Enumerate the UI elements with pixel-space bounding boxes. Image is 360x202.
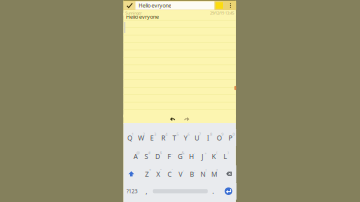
staticText: T	[172, 133, 176, 142]
staticText: _	[171, 150, 173, 155]
button[interactable]: C	[164, 165, 175, 182]
button[interactable]: Z	[141, 165, 153, 182]
staticText: W	[138, 133, 144, 142]
staticText: L	[223, 152, 226, 161]
button[interactable]: J	[197, 147, 208, 164]
button[interactable]: V	[175, 165, 186, 182]
staticText: I	[207, 133, 209, 142]
button[interactable]: Undo	[170, 117, 175, 121]
staticText: Y	[184, 133, 188, 142]
staticText: 6	[188, 131, 190, 137]
button[interactable]: Q	[124, 129, 135, 146]
button[interactable]: L	[219, 147, 231, 164]
staticText: R	[161, 133, 165, 142]
staticText: D	[155, 152, 160, 161]
staticText: ;	[194, 168, 195, 173]
staticText: 4	[165, 131, 167, 137]
staticText: (	[216, 150, 217, 155]
button[interactable]: A	[130, 147, 141, 164]
staticText: F	[167, 152, 170, 161]
button[interactable]: M	[209, 165, 220, 182]
staticText: S	[145, 152, 149, 161]
staticText: -	[194, 150, 195, 155]
staticText: 1	[132, 131, 134, 137]
staticText: $	[160, 150, 162, 155]
staticText: ?	[216, 168, 218, 173]
button[interactable]: D	[152, 147, 163, 164]
staticText: !	[205, 168, 206, 173]
button[interactable]: O	[214, 129, 225, 146]
staticText: 2	[143, 131, 145, 137]
staticText: C	[167, 170, 171, 179]
button[interactable]: N	[197, 165, 209, 182]
button[interactable]: I	[202, 129, 214, 146]
button[interactable]: Period	[208, 183, 218, 200]
staticText: &	[182, 150, 185, 155]
button[interactable]: Redo	[184, 117, 189, 121]
staticText: B	[190, 170, 194, 179]
button[interactable]: T	[169, 129, 180, 146]
button[interactable]: Y	[180, 129, 191, 146]
button[interactable]: G	[175, 147, 186, 164]
button[interactable]: F	[163, 147, 175, 164]
staticText: .	[212, 187, 214, 196]
staticText: P	[228, 133, 232, 142]
staticText: ?123	[126, 188, 137, 195]
staticText: X	[156, 170, 160, 179]
staticText: 0	[232, 131, 234, 137]
staticText: +	[204, 150, 206, 155]
staticText: V	[179, 170, 183, 179]
button[interactable]: Enter	[220, 183, 236, 200]
staticText: ,	[145, 187, 147, 196]
button[interactable]: Shift	[124, 165, 138, 182]
staticText: N	[200, 170, 205, 179]
staticText: U	[194, 133, 199, 142]
button[interactable]: H	[186, 147, 197, 164]
button[interactable]: U	[191, 129, 202, 146]
staticText: :	[183, 168, 184, 173]
button[interactable]: K	[208, 147, 219, 164]
staticText: Z	[145, 170, 149, 179]
staticText: @	[136, 150, 140, 155]
staticText: A	[133, 152, 137, 161]
staticText: J	[202, 152, 204, 161]
staticText: H	[189, 152, 194, 161]
staticText: 8	[210, 131, 212, 137]
staticText: 29/12/19 13:45	[210, 10, 234, 15]
staticText: Hello evryone	[126, 13, 159, 20]
button[interactable]: Note colour	[215, 1, 224, 10]
staticText: G	[178, 152, 183, 161]
staticText: 9	[221, 131, 223, 137]
staticText: 7	[199, 131, 201, 137]
staticText: 5	[176, 131, 178, 137]
button[interactable]: More options	[225, 1, 236, 10]
button[interactable]: P	[225, 129, 236, 146]
button[interactable]: Numbers and symbols	[124, 183, 139, 200]
button[interactable]: Save note	[124, 1, 135, 10]
staticText: K	[212, 152, 216, 161]
staticText: Q	[127, 133, 132, 142]
staticText: *	[149, 168, 151, 173]
button[interactable]: Comma	[141, 183, 151, 200]
staticText: "	[160, 168, 162, 173]
staticText: O	[217, 133, 222, 142]
staticText: #	[148, 150, 151, 155]
staticText: )	[227, 150, 228, 155]
button[interactable]: R	[158, 129, 169, 146]
button[interactable]: Space	[151, 183, 209, 200]
button[interactable]: B	[186, 165, 197, 182]
staticText: E	[150, 133, 154, 142]
button[interactable]: Backspace	[222, 165, 236, 182]
button[interactable]: E	[146, 129, 158, 146]
staticText: Sunninger	[125, 10, 142, 15]
button[interactable]: S	[141, 147, 152, 164]
staticText: M	[211, 170, 217, 179]
staticText: 3	[154, 131, 156, 137]
button[interactable]: W	[135, 129, 146, 146]
button[interactable]: X	[153, 165, 164, 182]
button[interactable]: Hello evryone	[135, 1, 215, 10]
staticText: '	[172, 168, 173, 173]
staticText: Hello evryone	[138, 2, 171, 9]
